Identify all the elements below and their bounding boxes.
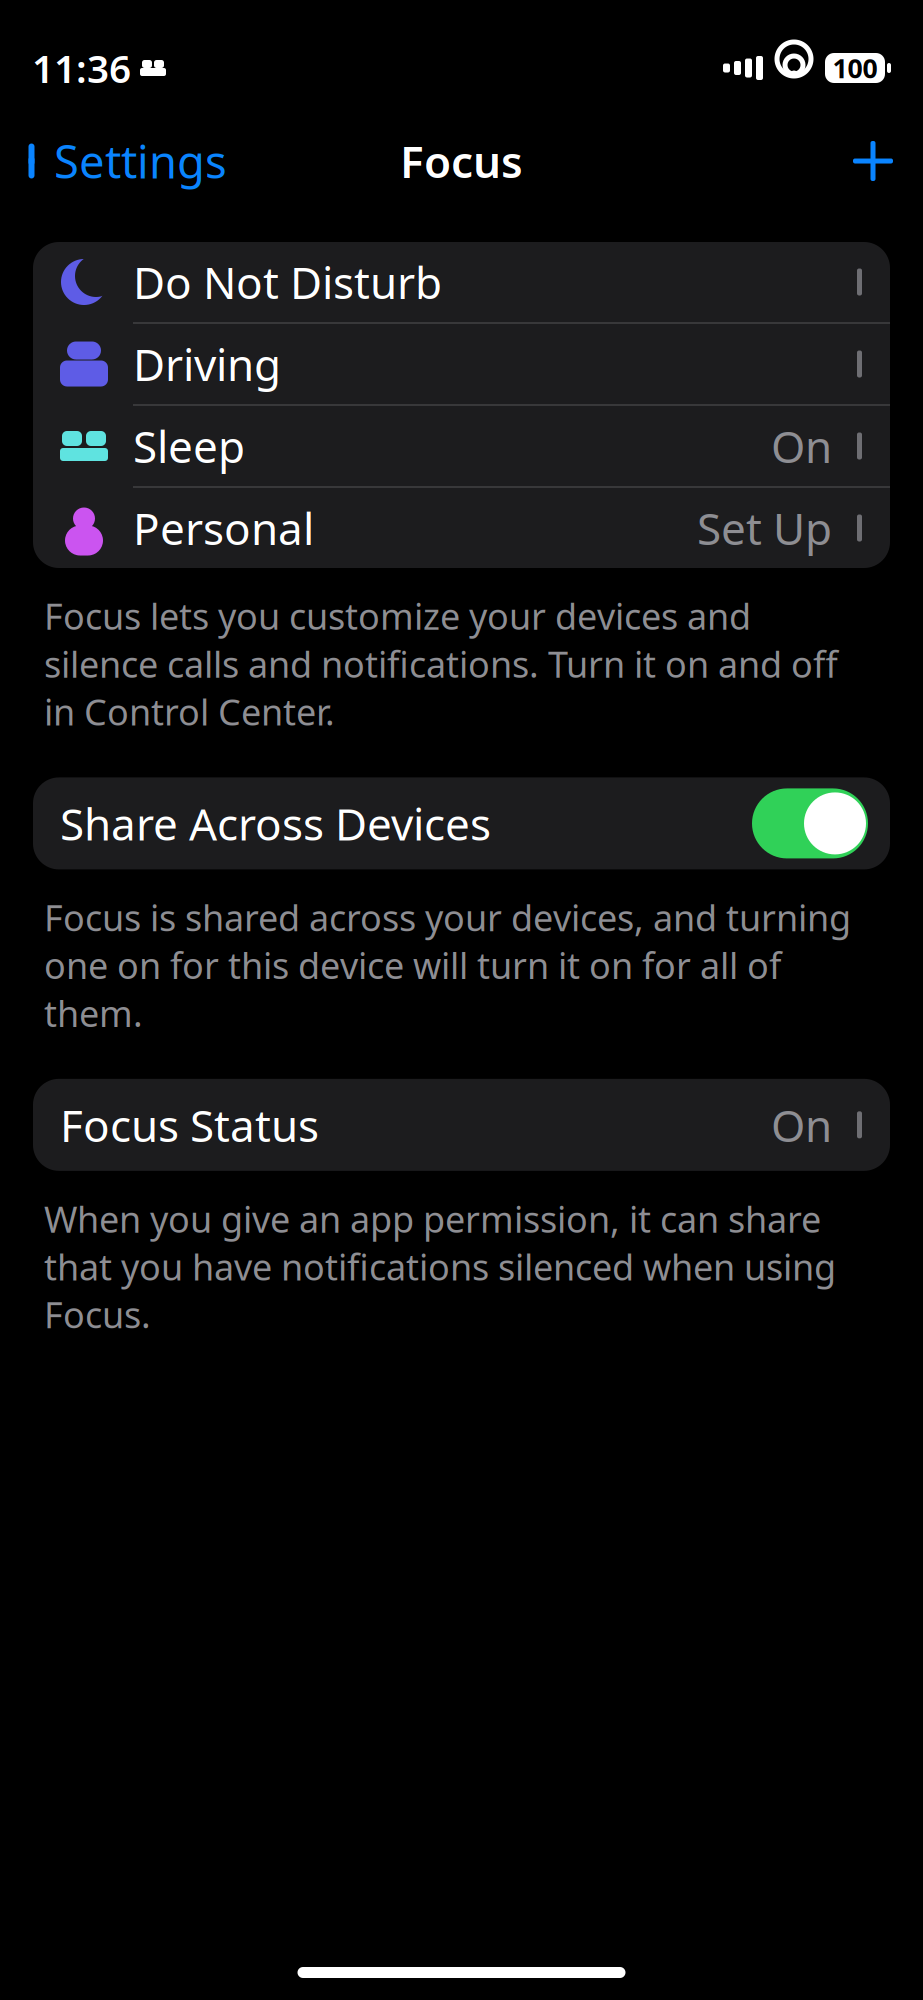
staticText: Sleep [133,417,245,475]
staticText: Personal [133,499,314,557]
button[interactable]: Do Not Disturb [33,242,890,324]
button[interactable]: Share Across Devices [33,777,890,869]
button[interactable]: Add Focus [829,129,917,193]
staticText: On [771,1096,832,1154]
staticText: Focus Status [60,1096,319,1154]
staticText: Share Across Devices [60,794,491,853]
button[interactable]: Personal [33,488,890,568]
staticText: Focus lets you customize your devices an… [44,592,838,735]
staticText: Settings [54,131,227,191]
staticText: Focus is shared across your devices, and… [44,893,851,1037]
button[interactable]: Driving [33,324,890,406]
staticText: 100 [832,50,877,86]
button[interactable]: Sleep [33,406,890,488]
staticText: Set Up [697,499,832,557]
staticText: Driving [133,335,281,393]
button[interactable]: Focus Status [33,1079,890,1171]
staticText: When you give an app permission, it can … [44,1195,836,1338]
staticText: Focus [400,132,523,190]
staticText: Do Not Disturb [133,253,442,311]
button[interactable]: Settings [6,121,245,201]
staticText: On [771,417,832,475]
staticText: 11:36 [32,42,131,94]
